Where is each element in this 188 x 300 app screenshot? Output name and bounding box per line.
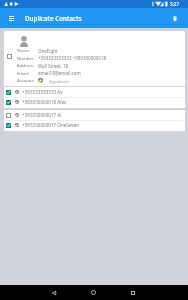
button[interactable]: Home	[81, 285, 105, 300]
button[interactable]: Select contact	[4, 51, 15, 62]
staticText: OneEight	[38, 48, 58, 54]
staticText: 3:27	[170, 1, 180, 7]
button[interactable]: Delete duplicates	[165, 8, 184, 28]
staticText: Number:	[17, 56, 35, 62]
staticText: +393333333333 +393350000018	[38, 55, 107, 61]
button[interactable]: Open navigation menu	[2, 8, 21, 28]
staticText: +393350000017 OneSeven	[22, 122, 80, 128]
staticText: @gmail.com	[49, 79, 69, 84]
button[interactable]: Back	[42, 285, 66, 300]
staticText: +393333333333 Ax	[22, 89, 63, 95]
button[interactable]: +393350000017 OneSeven	[4, 120, 185, 130]
staticText: +393350000017 Al	[22, 112, 62, 118]
staticText: Account:	[17, 78, 35, 84]
staticText: Wall Street, 18	[38, 63, 69, 69]
staticText: Email:	[17, 71, 29, 77]
staticText: Address:	[17, 63, 34, 69]
staticText: Name:	[17, 48, 30, 54]
button[interactable]: +393333333333 Ax	[4, 87, 185, 97]
staticText: Duplicate Contacts	[25, 14, 82, 23]
button[interactable]: +393350000017 Al	[4, 110, 185, 120]
staticText: +393350000018 Alex	[22, 99, 67, 105]
button[interactable]: Recent apps	[121, 285, 145, 300]
button[interactable]: +393350000018 Alex	[4, 97, 185, 107]
staticText: email18@email.com	[38, 70, 81, 76]
